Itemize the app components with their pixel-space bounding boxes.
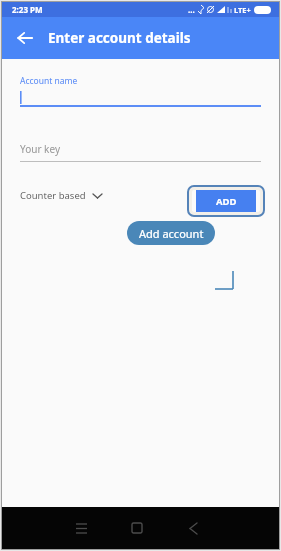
button[interactable]: Home bbox=[120, 511, 154, 545]
button[interactable]: Your key bbox=[20, 142, 261, 162]
staticText: ADD bbox=[216, 195, 237, 208]
staticText: ... bbox=[188, 4, 195, 15]
button[interactable]: Counter based bbox=[20, 189, 102, 202]
staticText: Enter account details bbox=[48, 29, 191, 47]
staticText: Counter based bbox=[20, 189, 86, 202]
button[interactable]: Back bbox=[10, 23, 40, 53]
button[interactable] bbox=[20, 91, 261, 104]
staticText: Your key bbox=[20, 142, 60, 156]
staticText: LTE+ bbox=[234, 5, 251, 15]
staticText: Account name bbox=[20, 75, 78, 87]
staticText: 2:23 PM bbox=[12, 4, 43, 15]
button[interactable]: Back bbox=[176, 511, 210, 545]
button[interactable]: ADD bbox=[196, 190, 256, 212]
button[interactable]: Add account bbox=[127, 221, 215, 245]
staticText: Add account bbox=[139, 226, 204, 241]
button[interactable]: Recent apps bbox=[64, 511, 98, 545]
